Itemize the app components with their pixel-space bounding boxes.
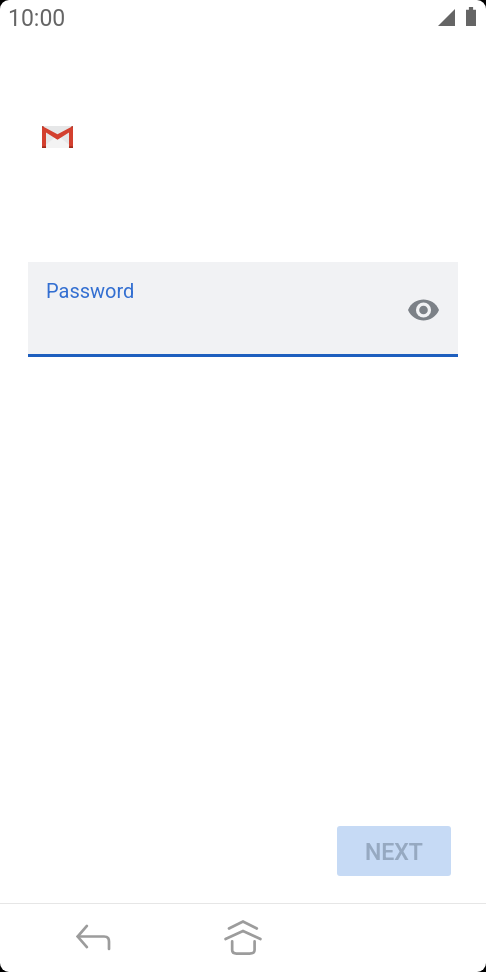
button[interactable]: Show password [402,288,445,331]
button[interactable]: Back [69,913,117,961]
button[interactable]: NEXT [337,826,451,876]
staticText: 10:00 [8,5,66,32]
staticText: NEXT [365,839,423,866]
button[interactable]: Home [219,911,267,959]
staticText: Password [46,279,135,302]
